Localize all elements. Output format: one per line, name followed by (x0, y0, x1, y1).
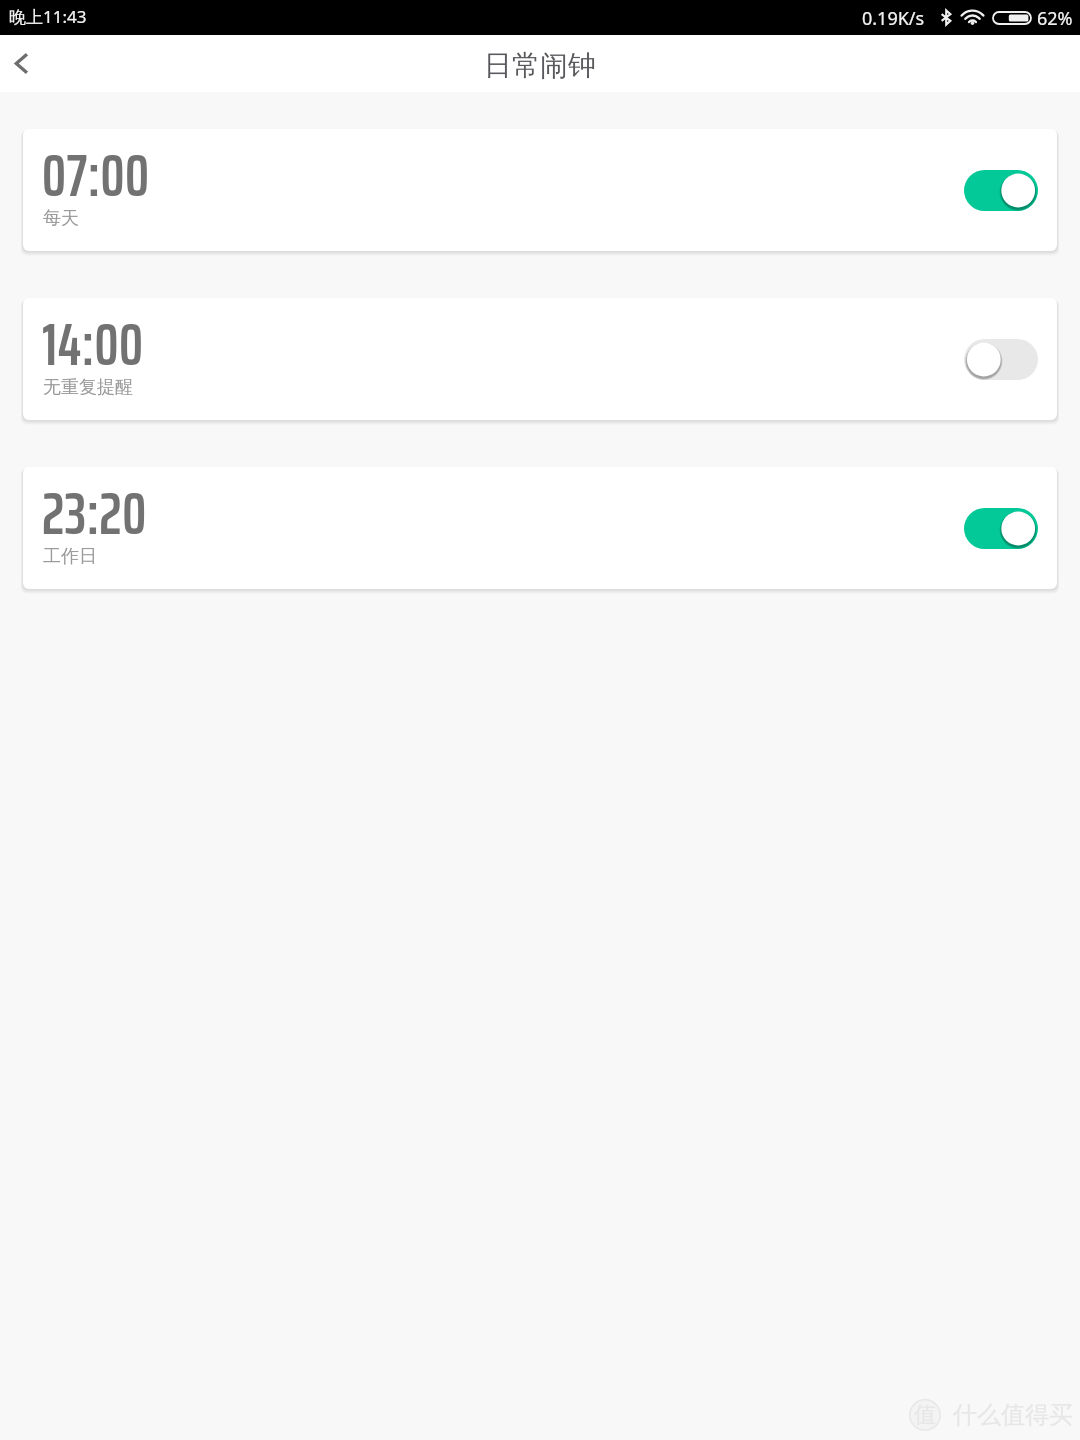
staticText: 无重复提醒 (43, 376, 133, 399)
staticText: 晚上11:43 (9, 5, 87, 28)
button[interactable]: Alarm on (964, 508, 1038, 549)
button[interactable]: 14:00 (23, 298, 1057, 420)
staticText: 什么值得买 (953, 1400, 1073, 1430)
staticText: 62% (1037, 6, 1073, 31)
staticText: 23:20 (42, 467, 147, 560)
button[interactable]: Alarm off (964, 339, 1038, 380)
staticText: 07:00 (42, 129, 150, 222)
button[interactable]: Alarm on (964, 170, 1038, 211)
staticText: 值 (914, 1401, 936, 1429)
button[interactable]: 23:20 (23, 467, 1057, 589)
staticText: 每天 (43, 207, 79, 230)
staticText: 0.19K/s (862, 6, 925, 31)
staticText: 14:00 (42, 298, 144, 391)
staticText: 日常闹钟 (484, 48, 596, 83)
button[interactable]: Back (0, 35, 43, 91)
staticText: 工作日 (43, 545, 97, 568)
button[interactable]: 07:00 (23, 129, 1057, 251)
